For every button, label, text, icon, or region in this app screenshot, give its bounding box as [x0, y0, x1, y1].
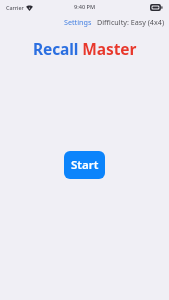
staticText: Difficulty: Easy (4x4): [97, 17, 165, 27]
staticText: Settings: [64, 17, 92, 27]
button[interactable]: Start: [64, 151, 105, 179]
button[interactable]: Settings: [62, 16, 94, 28]
staticText: Carrier: [6, 4, 24, 11]
other: Battery: [150, 4, 163, 11]
staticText: 9:40 PM: [74, 3, 96, 11]
staticText: Start: [71, 157, 99, 173]
staticText: Recall Master: [33, 38, 137, 59]
other: Wi-Fi: [26, 5, 33, 11]
